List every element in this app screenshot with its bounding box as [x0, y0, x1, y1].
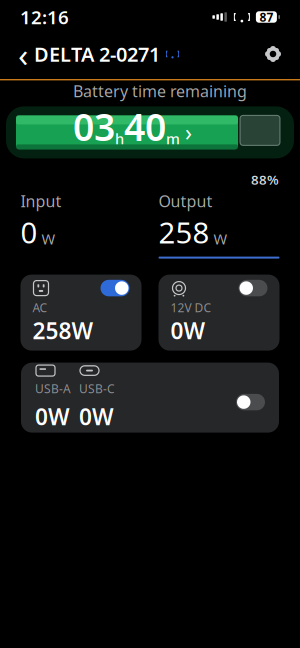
staticText: 258W — [32, 315, 93, 346]
staticText: AC — [32, 300, 47, 315]
button[interactable]: Back — [12, 37, 34, 71]
staticText: m — [166, 129, 180, 148]
staticText: › — [185, 117, 192, 147]
staticText: USB-A — [35, 381, 71, 396]
button[interactable]: 12V DC — [158, 275, 279, 351]
staticText: h — [115, 129, 124, 148]
staticText: DELTA 2-0271 — [34, 41, 160, 67]
staticText: 258 — [158, 213, 209, 252]
staticText: Output — [158, 190, 212, 212]
staticText: 40 — [124, 102, 166, 151]
button[interactable]: AC — [20, 275, 141, 351]
staticText: 0W — [79, 401, 114, 432]
staticText: USB-C — [79, 381, 115, 396]
staticText: Battery time remaining — [73, 80, 247, 102]
staticText: ‹ — [18, 32, 28, 76]
staticText: W — [41, 229, 55, 249]
staticText: 0 — [20, 213, 37, 252]
button[interactable]: 03 — [73, 102, 192, 151]
staticText: Input — [20, 190, 61, 212]
staticText: 88% — [251, 171, 279, 188]
staticText: 12V DC — [170, 300, 211, 315]
staticText: 0W — [170, 315, 205, 346]
staticText: 12:16 — [20, 5, 69, 29]
staticText: 0W — [35, 401, 70, 432]
staticText: W — [213, 229, 227, 249]
button[interactable]: Settings — [258, 39, 288, 69]
staticText: 87 — [259, 9, 273, 25]
button[interactable]: USB-A — [21, 363, 279, 433]
staticText: 03 — [73, 102, 115, 151]
